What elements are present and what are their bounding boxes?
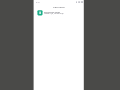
button[interactable]: Document [34, 10, 84, 16]
staticText: 9:41 [36, 1, 40, 4]
staticText: Discussion notes [44, 11, 61, 14]
staticText: Edit notes [53, 5, 65, 8]
staticText: Created 24 Jul, Last edit 28 Jul [44, 13, 64, 15]
other: Document [37, 10, 43, 16]
